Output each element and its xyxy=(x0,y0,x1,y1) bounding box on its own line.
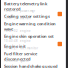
staticText: Engine warning condition wave xyxy=(4,21,56,32)
staticText: 10:41:30 daemon xyxy=(4,16,31,20)
staticText: 10:40:48 engine xyxy=(4,39,31,43)
staticText: Engine skin operation set xyxy=(4,34,54,39)
button[interactable]: 10:40:21 fuel.monitor xyxy=(1,49,65,59)
staticText: Session handshake queued xyxy=(4,64,58,68)
staticText: Fuel filter service disconnected xyxy=(4,51,37,62)
button[interactable]: 10:40:48 engine xyxy=(1,39,65,49)
staticText: 10:41:02 engine xyxy=(4,29,31,33)
staticText: 10:40:21 fuel.monitor xyxy=(4,46,38,50)
staticText: 10:39:58 system xyxy=(4,59,28,63)
button[interactable]: 10:42:07 system xyxy=(1,0,65,9)
button[interactable]: 10:41:55 power.mgr xyxy=(1,9,65,19)
staticText: Cooling vector settings xyxy=(4,14,50,19)
button[interactable]: 10:39:58 system xyxy=(1,59,65,68)
button[interactable]: 10:41:02 engine xyxy=(1,29,65,39)
staticText: Engine init xyxy=(4,44,26,49)
staticText: 10:41:55 power.mgr xyxy=(4,9,35,13)
staticText: Battery telemetry link restored xyxy=(4,1,47,12)
button[interactable]: 10:41:30 daemon xyxy=(1,19,65,29)
